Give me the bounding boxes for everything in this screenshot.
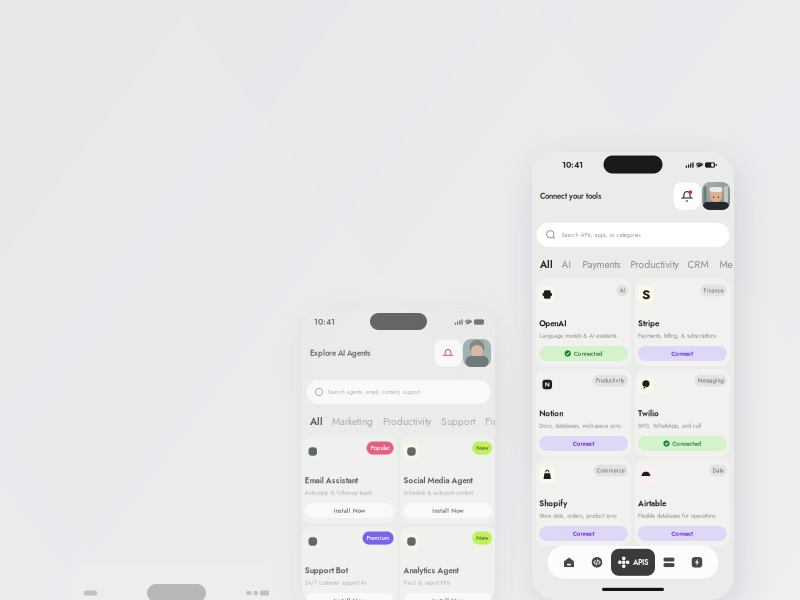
button[interactable]: Notifications: [673, 182, 700, 209]
button[interactable]: Connect: [539, 436, 628, 451]
button[interactable]: Code: [583, 547, 611, 577]
staticText: Install Now: [334, 596, 365, 600]
staticText: Social Media Agent: [403, 475, 472, 486]
button[interactable]: Connect: [638, 346, 727, 361]
staticText: 10:41: [562, 159, 583, 171]
button[interactable]: Me: [719, 254, 732, 275]
staticText: All: [540, 257, 553, 272]
staticText: Explore AI Agents: [310, 347, 370, 359]
button[interactable]: Connected: [638, 436, 727, 451]
button[interactable]: Payments: [582, 254, 620, 275]
staticText: CRM: [687, 257, 708, 272]
staticText: Connected: [672, 439, 701, 448]
staticText: Airtable: [638, 498, 666, 509]
staticText: Connect: [671, 529, 693, 538]
button[interactable]: AI: [561, 254, 570, 275]
staticText: Install Now: [432, 506, 463, 515]
staticText: New: [476, 534, 488, 542]
staticText: Shopify: [539, 498, 567, 509]
staticText: Popular: [371, 444, 390, 452]
staticText: Schedule & auto-post content: [403, 489, 472, 497]
staticText: Data: [713, 466, 724, 475]
button[interactable]: All: [540, 254, 553, 275]
staticText: AI: [620, 286, 625, 295]
staticText: Stripe: [638, 318, 659, 329]
staticText: Messaging: [698, 376, 724, 385]
button[interactable]: Connect: [638, 526, 727, 541]
staticText: Twilio: [638, 408, 659, 419]
staticText: OpenAI: [539, 318, 566, 329]
staticText: All: [310, 414, 323, 429]
button[interactable]: Home: [555, 547, 583, 577]
staticText: Payments: [582, 257, 620, 272]
staticText: SMS, WhatsApp, and call: [638, 422, 701, 430]
staticText: Connect: [573, 439, 595, 448]
button[interactable]: Productivity: [630, 254, 678, 275]
staticText: Support: [441, 414, 475, 429]
staticText: Search APIs, apps, or categories: [561, 231, 640, 239]
staticText: Notion: [539, 408, 563, 419]
staticText: Docs, databases, workspace sync: [539, 422, 621, 430]
staticText: Connected: [574, 349, 603, 358]
button[interactable]: Profile: [702, 182, 730, 210]
button[interactable]: Connect: [539, 526, 628, 541]
staticText: Flexible databases for operations: [638, 512, 715, 520]
staticText: 10:41: [314, 316, 335, 328]
button[interactable]: Logs: [655, 547, 683, 577]
staticText: Search agents, email, content, support: [328, 388, 420, 396]
staticText: Productivity: [630, 257, 678, 272]
staticText: Connect: [573, 529, 595, 538]
staticText: S: [642, 285, 650, 304]
staticText: Payments, billing, & subscriptions: [638, 332, 716, 340]
staticText: Support Bot: [305, 565, 348, 576]
staticText: Language models & AI assistants: [539, 332, 616, 340]
staticText: Store data, orders, product sync: [539, 512, 617, 520]
button[interactable]: Connected: [539, 346, 628, 361]
staticText: Analytics Agent: [403, 565, 458, 576]
staticText: Finance: [485, 414, 518, 429]
button[interactable]: APIS: [611, 549, 655, 576]
staticText: Marketing: [332, 414, 373, 429]
staticText: Auto-reply & follow-up leads: [305, 489, 372, 497]
staticText: Connect your tools: [540, 190, 601, 202]
button[interactable]: Activity: [683, 547, 711, 577]
staticText: AI: [561, 257, 570, 272]
staticText: Install Now: [334, 506, 365, 515]
button[interactable]: Search APIs, apps, or categories: [536, 223, 729, 247]
staticText: Connect: [671, 349, 693, 358]
button[interactable]: CRM: [687, 254, 708, 275]
staticText: New: [476, 444, 488, 452]
staticText: Finance: [704, 286, 724, 295]
staticText: APIS: [633, 557, 648, 568]
staticText: Track & report KPIs: [403, 579, 449, 587]
staticText: Email Assistant: [305, 475, 358, 486]
staticText: Commerce: [597, 466, 625, 475]
staticText: Install Now: [432, 596, 463, 600]
staticText: Productivity: [383, 414, 431, 429]
staticText: Premium: [367, 534, 390, 542]
staticText: 24/7 customer support AI: [305, 579, 366, 587]
staticText: Me: [719, 257, 732, 272]
staticText: Productivity: [596, 376, 625, 385]
